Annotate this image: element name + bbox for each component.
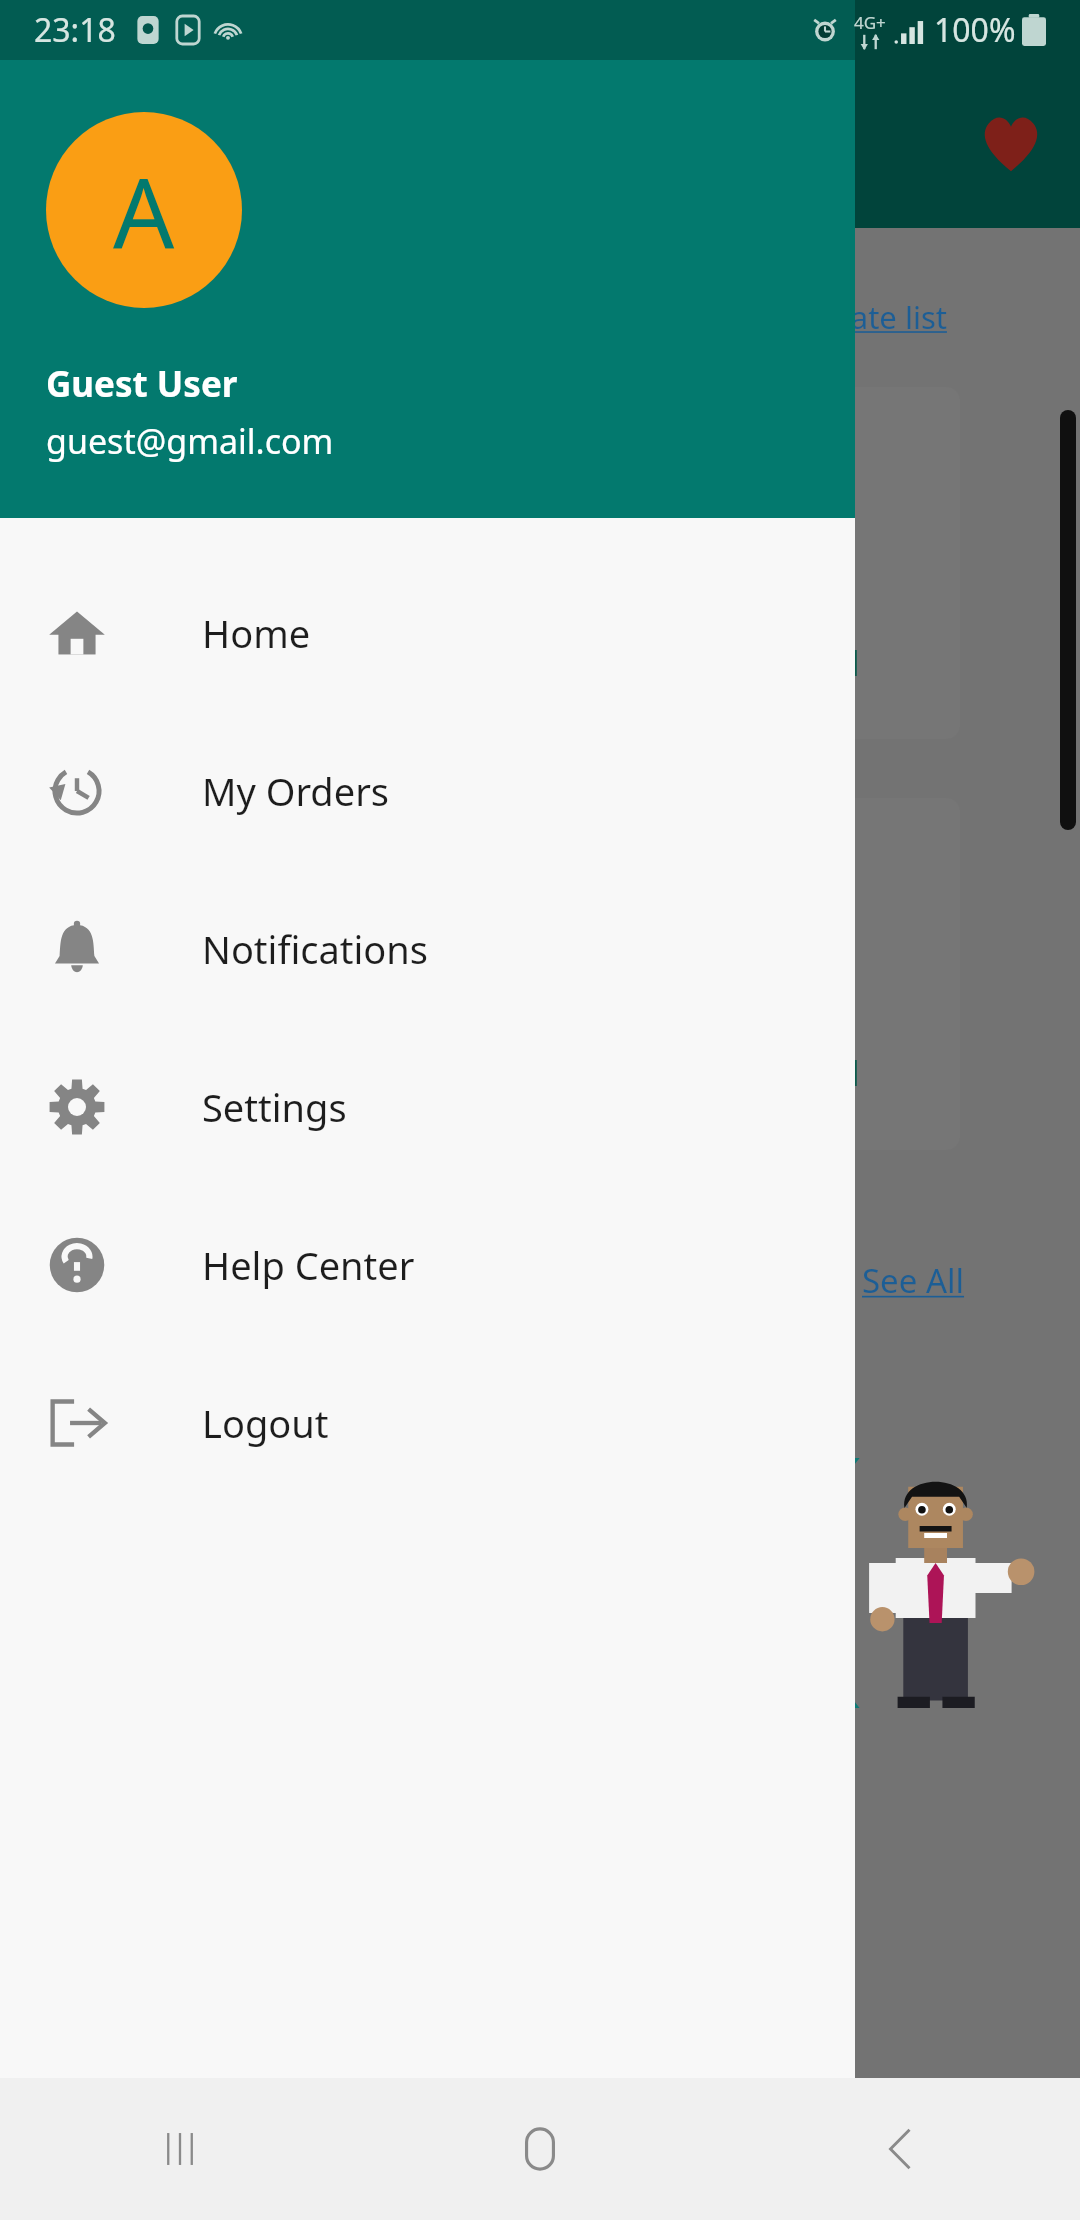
staticText: 100% (934, 8, 1016, 52)
button[interactable]: Notifications (0, 870, 855, 1028)
staticText: A (113, 145, 175, 276)
button[interactable]: Recents (0, 2078, 360, 2220)
button[interactable]: Back (720, 2078, 1080, 2220)
button[interactable]: Settings (0, 1028, 855, 1186)
button[interactable]: Home (360, 2078, 720, 2220)
staticText: 4G+ (854, 11, 886, 34)
staticText: Guest User (46, 360, 238, 408)
button[interactable]: See All (862, 1258, 965, 1303)
staticText: Home (202, 607, 311, 659)
staticText: Logout (202, 1397, 329, 1449)
staticText: Help Center (202, 1239, 415, 1291)
button[interactable]: Home (0, 554, 855, 712)
staticText: Settings (202, 1081, 347, 1133)
staticText: See All (862, 1258, 965, 1303)
staticText: My Orders (202, 765, 390, 817)
staticText: Notifications (202, 923, 429, 975)
button[interactable]: A (46, 112, 242, 308)
staticText: 23:18 (34, 8, 116, 52)
staticText: -01 (810, 1048, 863, 1097)
button[interactable]: Logout (0, 1344, 855, 1502)
staticText: Update list (790, 296, 947, 338)
button[interactable]: Favorites (975, 108, 1047, 180)
staticText: -01 (810, 638, 863, 687)
button[interactable]: My Orders (0, 712, 855, 870)
staticText: guest@gmail.com (46, 418, 334, 464)
button[interactable]: Help Center (0, 1186, 855, 1344)
